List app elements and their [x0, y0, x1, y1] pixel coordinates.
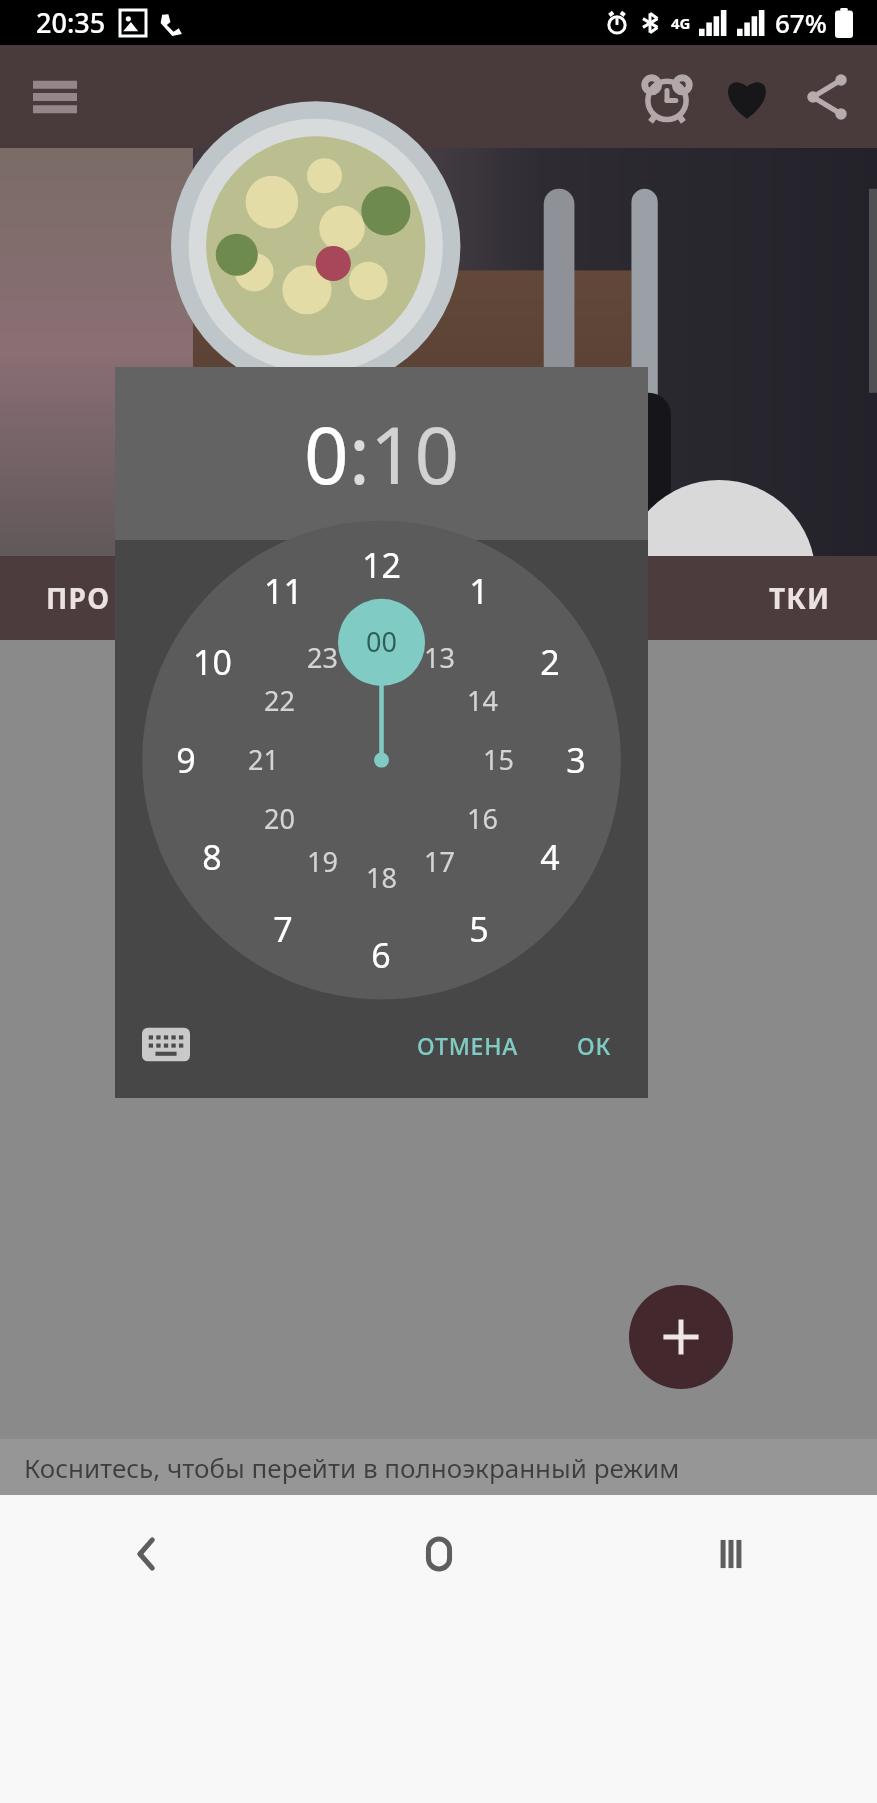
staticText: 8	[202, 834, 222, 880]
staticText: 10	[193, 639, 232, 685]
staticText: 17	[424, 843, 455, 880]
staticText: 18	[366, 859, 397, 896]
staticText: :	[349, 401, 370, 507]
staticText: 20	[264, 800, 295, 837]
button[interactable]: 10	[370, 401, 460, 507]
staticText: 21	[248, 741, 279, 778]
staticText: 2	[540, 639, 560, 685]
staticText: ОТМЕНА	[417, 1030, 519, 1061]
staticText: 67%	[775, 5, 827, 40]
staticText: 14	[467, 682, 498, 719]
button[interactable]: ОК	[561, 1018, 628, 1073]
staticText: ОК	[577, 1030, 612, 1061]
staticText: 15	[483, 741, 514, 778]
staticText: 00	[366, 623, 397, 660]
staticText: 3	[566, 737, 586, 783]
staticText: Коснитесь, чтобы перейти в полноэкранный…	[24, 1450, 680, 1485]
staticText: 7	[273, 906, 293, 952]
button[interactable]: Share	[787, 57, 867, 137]
staticText: 23	[307, 639, 338, 676]
staticText: 22	[264, 682, 295, 719]
staticText: 1	[469, 568, 489, 614]
staticText: 19	[307, 843, 338, 880]
staticText: 12	[362, 542, 401, 588]
button[interactable]: ПРО	[46, 579, 111, 617]
button[interactable]: 0	[304, 401, 349, 507]
staticText: 9	[176, 737, 196, 783]
button[interactable]: Back	[0, 1495, 293, 1613]
staticText: 20:35	[36, 4, 106, 41]
staticText: 13	[424, 639, 455, 676]
button[interactable]: Add to favorites	[707, 57, 787, 137]
button[interactable]: Open navigation menu	[18, 60, 92, 134]
button[interactable]: Set timer	[627, 57, 707, 137]
button[interactable]: ОТМЕНА	[401, 1018, 535, 1073]
button[interactable]: ТКИ	[769, 579, 831, 617]
staticText: 16	[467, 800, 498, 837]
button[interactable]: Recent apps	[585, 1495, 877, 1613]
staticText: 6	[371, 932, 391, 978]
staticText: 4	[540, 834, 560, 880]
staticText: 5	[469, 906, 489, 952]
staticText: 4G	[671, 13, 691, 33]
button[interactable]: Add recipe	[629, 1285, 733, 1389]
button[interactable]: Switch to text input	[135, 1014, 197, 1076]
button[interactable]: Home	[293, 1495, 585, 1613]
staticText: 11	[264, 568, 303, 614]
